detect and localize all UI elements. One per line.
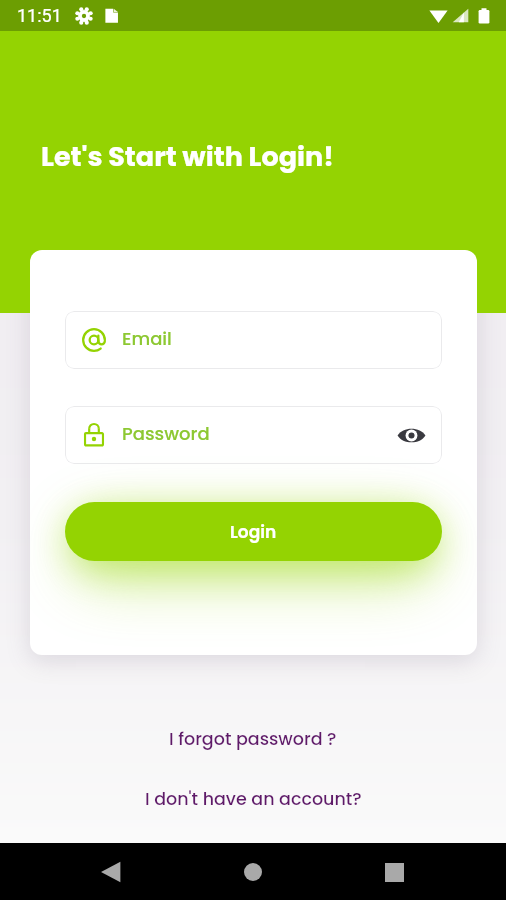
staticText: Let's Start with Login! (41, 138, 334, 176)
button[interactable]: Back (88, 848, 136, 896)
button[interactable]: Home (229, 848, 277, 896)
button[interactable]: I don't have an account? (0, 778, 506, 820)
button[interactable]: Password (65, 406, 442, 464)
staticText: Email (122, 326, 172, 351)
staticText: Login (230, 520, 277, 544)
button[interactable]: Email (65, 311, 442, 369)
button[interactable]: I forgot password ? (0, 718, 506, 760)
staticText: I forgot password ? (169, 727, 337, 752)
button[interactable]: Recent apps (370, 848, 418, 896)
staticText: I don't have an account? (145, 787, 362, 812)
staticText: Password (122, 421, 210, 446)
button[interactable]: Login (65, 502, 442, 561)
staticText: 11:51 (17, 5, 62, 26)
button[interactable]: Show password (393, 417, 429, 453)
